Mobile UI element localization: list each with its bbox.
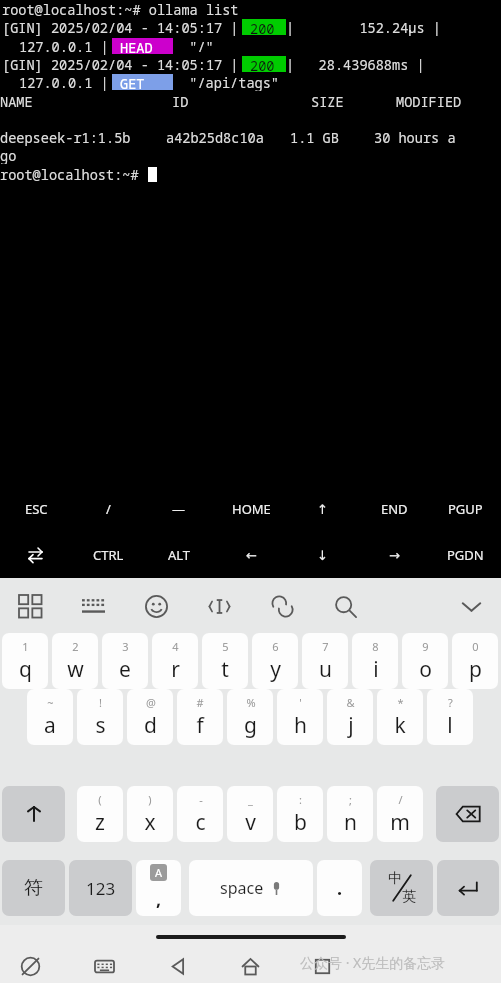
staticText: l xyxy=(447,711,453,740)
button[interactable]: → xyxy=(358,540,430,570)
button[interactable]: Backspace xyxy=(436,786,499,842)
button[interactable]: — xyxy=(143,494,215,524)
button[interactable]: 3 xyxy=(102,633,148,689)
button[interactable]: ↑ xyxy=(286,494,358,524)
button[interactable]: A xyxy=(136,860,181,916)
button[interactable]: Keyboard layout xyxy=(71,584,115,628)
button[interactable]: ESC xyxy=(0,494,72,524)
button[interactable]: : xyxy=(277,786,323,842)
button[interactable]: Recents xyxy=(302,946,342,983)
button[interactable]: Search xyxy=(323,584,367,628)
staticText: NAME xyxy=(0,92,33,110)
staticText: 8 xyxy=(372,639,379,654)
button[interactable]: ← xyxy=(215,540,287,570)
button[interactable]: CTRL xyxy=(72,540,144,570)
button[interactable]: Tab xyxy=(0,540,72,570)
button[interactable]: Hide keyboard xyxy=(449,584,493,628)
staticText: [GIN] 2025/02/04 - 14:05:17 | xyxy=(2,55,239,73)
staticText: ESC xyxy=(25,500,48,518)
staticText: 5 xyxy=(222,639,229,654)
button[interactable]: 4 xyxy=(152,633,198,689)
button[interactable]: 2 xyxy=(52,633,98,689)
button[interactable]: Apps xyxy=(8,584,52,628)
staticText: v xyxy=(245,808,256,837)
staticText: "/api/tags" xyxy=(173,73,280,91)
staticText: s xyxy=(95,711,106,740)
staticText: 9 xyxy=(422,639,429,654)
button[interactable]: 5 xyxy=(202,633,248,689)
staticText: 0 xyxy=(472,639,479,654)
staticText: SIZE xyxy=(311,92,344,110)
button[interactable]: ! xyxy=(77,689,123,745)
staticText: 127.0.0.1 | xyxy=(19,37,109,55)
staticText: j xyxy=(348,711,354,740)
button[interactable]: Shift xyxy=(2,786,65,842)
staticText: HOME xyxy=(232,500,271,518)
staticText: q xyxy=(19,655,32,684)
staticText: ? xyxy=(448,695,453,710)
staticText: → xyxy=(389,548,400,563)
button[interactable]: HOME xyxy=(215,494,287,524)
button[interactable]: Home xyxy=(230,946,270,983)
button[interactable]: 8 xyxy=(352,633,398,689)
button[interactable]: PGUP xyxy=(429,494,501,524)
button[interactable]: / xyxy=(72,494,144,524)
button[interactable]: ' xyxy=(277,689,323,745)
button[interactable]: ( xyxy=(77,786,123,842)
staticText: u xyxy=(319,655,332,684)
button[interactable]: 符 xyxy=(2,860,65,916)
button[interactable]: PGDN xyxy=(429,540,501,570)
staticText: root@localhost:~# ollama list xyxy=(2,0,239,18)
button[interactable]: ↓ xyxy=(286,540,358,570)
staticText: 123 xyxy=(86,877,116,900)
staticText: * xyxy=(397,695,404,710)
staticText: | 28.439688ms | xyxy=(286,55,425,73)
staticText: MODIFIED xyxy=(396,92,462,110)
button[interactable]: 7 xyxy=(302,633,348,689)
button[interactable]: END xyxy=(358,494,430,524)
button[interactable]: _ xyxy=(227,786,273,842)
staticText: root@localhost:~# xyxy=(0,165,139,183)
staticText: 6 xyxy=(272,639,279,654)
button[interactable]: ; xyxy=(327,786,373,842)
button[interactable]: . xyxy=(317,860,362,916)
button[interactable]: / xyxy=(377,786,423,842)
staticText: # xyxy=(196,695,204,710)
staticText: 1.1 GB xyxy=(290,128,339,146)
button[interactable]: Back xyxy=(158,946,198,983)
button[interactable]: ? xyxy=(427,689,473,745)
button[interactable]: * xyxy=(377,689,423,745)
button[interactable]: Rotate xyxy=(10,946,50,983)
button[interactable]: ~ xyxy=(27,689,73,745)
button[interactable]: % xyxy=(227,689,273,745)
staticText: d xyxy=(144,711,157,740)
button[interactable]: & xyxy=(327,689,373,745)
button[interactable]: 0 xyxy=(452,633,498,689)
staticText: m xyxy=(390,808,410,837)
button[interactable]: Keyboard xyxy=(84,946,124,983)
button[interactable]: 123 xyxy=(69,860,132,916)
staticText: 200 xyxy=(250,19,275,35)
staticText: go xyxy=(0,146,17,164)
button[interactable]: 中 xyxy=(370,860,433,916)
button[interactable]: 1 xyxy=(2,633,48,689)
staticText: ! xyxy=(99,695,102,710)
button[interactable]: Emoji xyxy=(134,584,178,628)
button[interactable]: Enter xyxy=(437,860,499,916)
button[interactable]: 9 xyxy=(402,633,448,689)
staticText: "/" xyxy=(173,37,214,55)
staticText: / xyxy=(106,500,111,518)
button[interactable]: ALT xyxy=(143,540,215,570)
button[interactable]: # xyxy=(177,689,223,745)
staticText: 中 xyxy=(388,870,402,888)
button[interactable]: ) xyxy=(127,786,173,842)
button[interactable]: @ xyxy=(127,689,173,745)
button[interactable]: - xyxy=(177,786,223,842)
button[interactable]: 6 xyxy=(252,633,298,689)
staticText: t xyxy=(221,655,229,684)
button[interactable]: Text cursor xyxy=(197,584,241,628)
button[interactable]: space xyxy=(189,860,313,916)
staticText: n xyxy=(344,808,357,837)
button[interactable]: Clipboard xyxy=(260,584,304,628)
staticText: p xyxy=(469,655,482,684)
